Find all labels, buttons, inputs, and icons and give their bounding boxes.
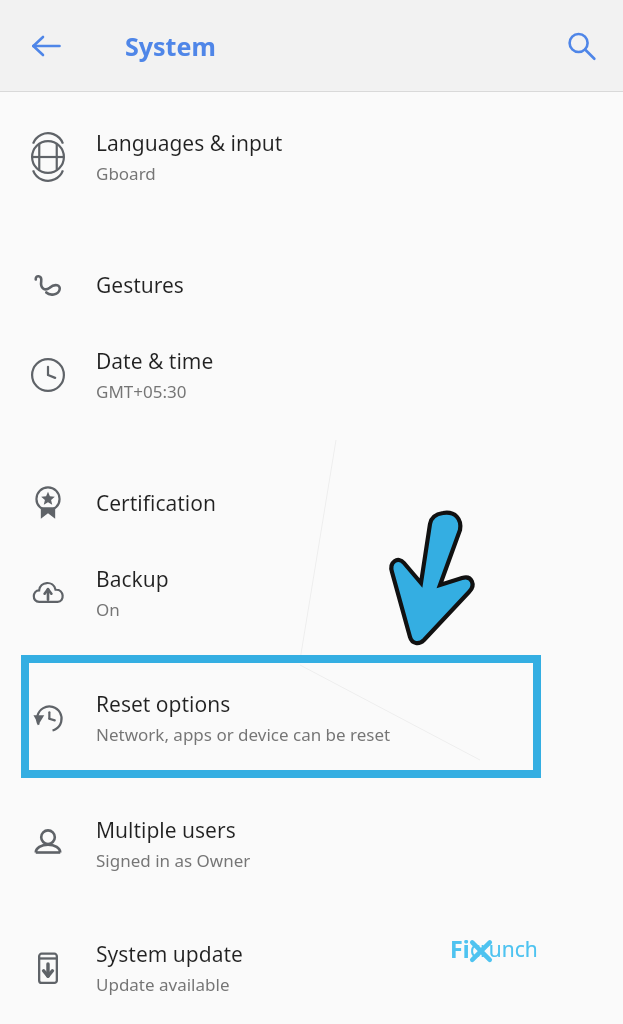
button[interactable]: Languages & input — [0, 112, 623, 202]
button[interactable]: Reset options — [0, 673, 623, 763]
button[interactable]: Date & time — [0, 330, 623, 420]
staticText: crunch — [470, 935, 538, 964]
staticText: Multiple users — [96, 816, 236, 845]
button[interactable]: Backup — [0, 548, 623, 638]
staticText: Gboard — [96, 162, 156, 185]
staticText: Signed in as Owner — [96, 849, 251, 872]
button[interactable]: System update — [0, 923, 623, 1013]
button[interactable]: Search — [558, 23, 604, 69]
staticText: GMT+05:30 — [96, 380, 187, 403]
staticText: System update — [96, 940, 243, 969]
staticText: Languages & input — [96, 129, 283, 158]
staticText: Certification — [96, 489, 216, 518]
staticText: System — [125, 29, 216, 63]
button[interactable]: Back — [23, 23, 69, 69]
staticText: Fi — [450, 933, 470, 964]
button[interactable]: Gestures — [0, 240, 623, 330]
staticText: Reset options — [96, 690, 231, 719]
staticText: Backup — [96, 565, 169, 594]
button[interactable]: Multiple users — [0, 799, 623, 889]
staticText: On — [96, 598, 120, 621]
staticText: Update available — [96, 973, 230, 996]
button[interactable]: Certification — [0, 458, 623, 548]
staticText: Gestures — [96, 271, 184, 300]
staticText: Date & time — [96, 347, 214, 376]
staticText: Network, apps or device can be reset — [96, 723, 391, 746]
